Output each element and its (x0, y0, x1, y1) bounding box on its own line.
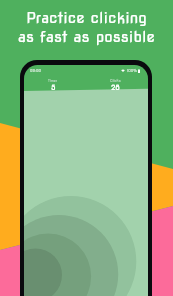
staticText: 5 (51, 84, 56, 92)
staticText: Clicks (110, 79, 121, 83)
staticText: 28 (111, 84, 120, 92)
staticText: Practice clicking as fast as possible (0, 8, 173, 46)
staticText: 09:00 (30, 69, 41, 73)
staticText: 100% (127, 69, 137, 73)
staticText: Timer (48, 79, 58, 83)
